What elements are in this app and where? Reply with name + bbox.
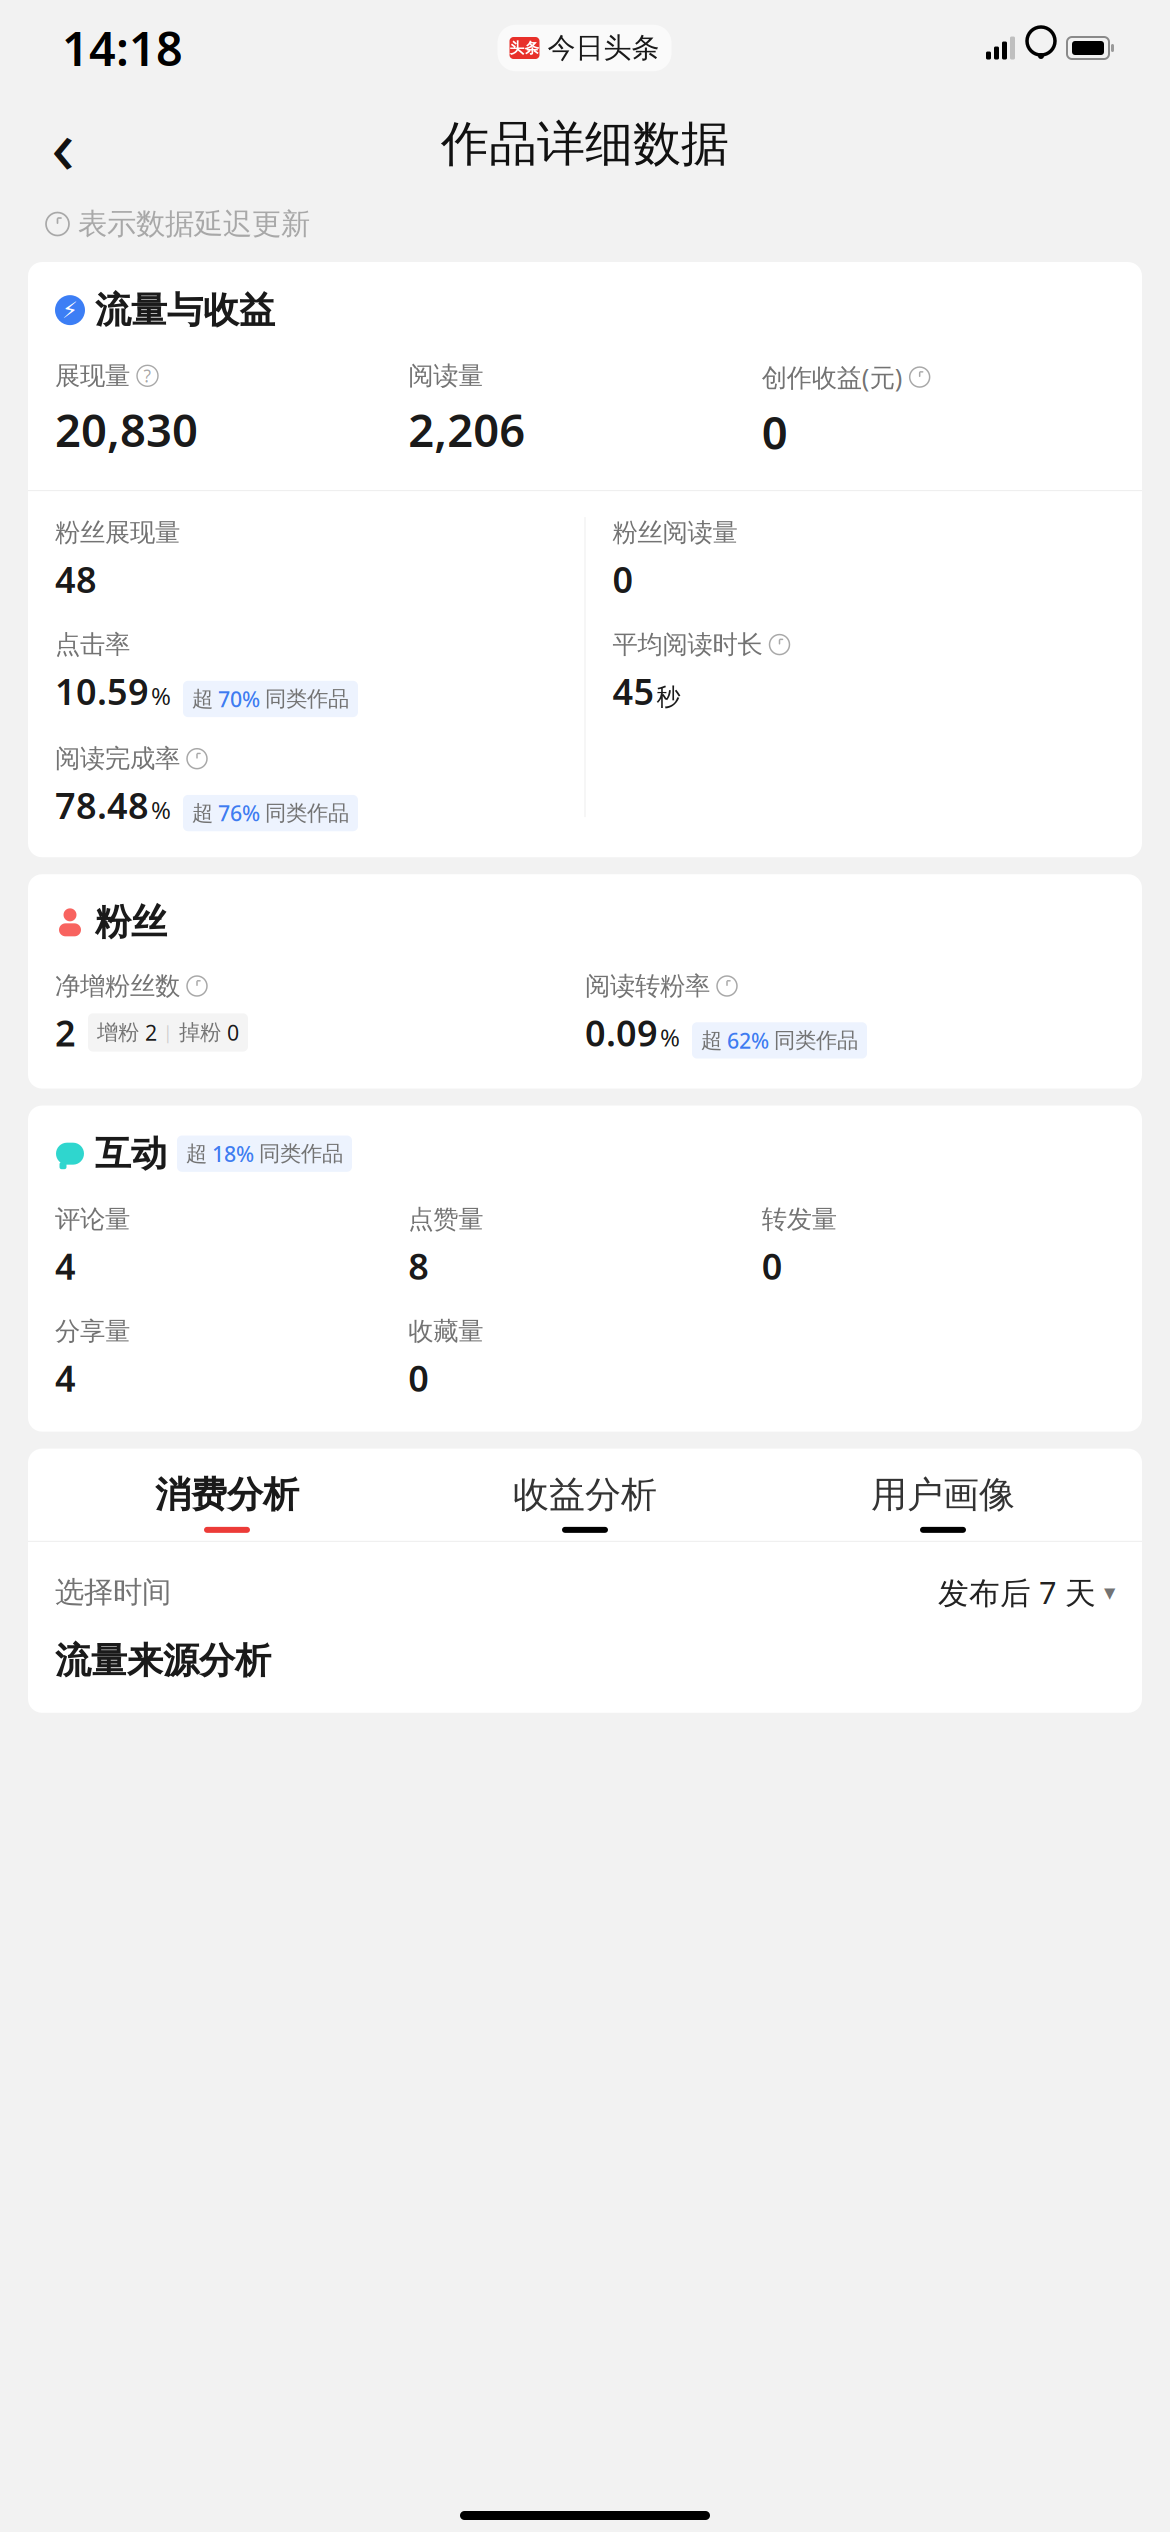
staticText: 互动 — [95, 1132, 167, 1176]
staticText: 头条 — [509, 39, 539, 57]
staticText: 创作收益(元) — [762, 360, 903, 394]
staticText: 同类作品 — [774, 1027, 858, 1053]
staticText: 48 — [55, 555, 97, 603]
staticText: 粉丝展现量 — [55, 517, 180, 548]
staticText: 超 — [192, 800, 213, 826]
staticText: 转发量 — [762, 1204, 837, 1235]
staticText: 10.59 — [55, 667, 149, 715]
staticText: 2 — [55, 1009, 76, 1056]
button[interactable]: 发布后 7 天 — [938, 1572, 1115, 1612]
staticText: 62% — [727, 1026, 769, 1054]
staticText: 发布后 7 天 — [938, 1572, 1096, 1612]
staticText: 0 — [762, 1242, 783, 1290]
staticText: 作品详细数据 — [441, 114, 729, 173]
staticText: 评论量 — [55, 1204, 130, 1235]
staticText: 阅读完成率 — [55, 743, 180, 774]
staticText: 同类作品 — [259, 1141, 343, 1167]
staticText: ‹ — [51, 93, 75, 195]
staticText: % — [660, 1021, 680, 1053]
staticText: 净增粉丝数 — [55, 970, 180, 1002]
staticText: 20,830 — [55, 399, 198, 460]
staticText: | — [163, 1021, 173, 1044]
staticText: ⚡︎ — [62, 297, 78, 323]
staticText: 70% — [218, 685, 260, 713]
staticText: 0 — [408, 1354, 429, 1402]
staticText: 14:18 — [62, 17, 183, 79]
staticText: 超 — [186, 1141, 207, 1167]
staticText: 阅读转粉率 — [585, 970, 710, 1002]
staticText: 平均阅读时长 — [612, 629, 762, 660]
staticText: 2 — [145, 1018, 157, 1047]
staticText: 收藏量 — [408, 1316, 483, 1347]
staticText: 同类作品 — [265, 686, 349, 712]
staticText: 增粉 — [97, 1019, 139, 1046]
button[interactable]: 消费分析 — [48, 1473, 406, 1541]
staticText: 18% — [212, 1139, 254, 1168]
button[interactable]: 收益分析 — [406, 1473, 764, 1541]
staticText: 76% — [218, 799, 260, 827]
staticText: 0 — [612, 555, 633, 603]
staticText: 秒 — [656, 682, 680, 712]
staticText: 流量来源分析 — [55, 1639, 271, 1683]
staticText: 今日头条 — [547, 31, 659, 65]
staticText: % — [151, 794, 171, 826]
staticText: 超 — [192, 686, 213, 712]
staticText: 用户画像 — [871, 1473, 1015, 1517]
staticText: 78.48 — [55, 781, 149, 829]
staticText: 选择时间 — [55, 1574, 171, 1610]
staticText: 点击率 — [55, 629, 130, 660]
staticText: 超 — [701, 1027, 722, 1053]
staticText: 点赞量 — [408, 1204, 483, 1235]
button[interactable]: 用户画像 — [764, 1473, 1122, 1541]
staticText: 消费分析 — [155, 1473, 299, 1517]
staticText: 分享量 — [55, 1316, 130, 1347]
staticText: 2,206 — [408, 399, 525, 460]
staticText: 0 — [762, 402, 788, 462]
staticText: 同类作品 — [265, 800, 349, 826]
staticText: 4 — [55, 1354, 76, 1402]
staticText: % — [151, 680, 171, 712]
staticText: ▾ — [1104, 1579, 1115, 1605]
button[interactable]: 返回 — [28, 109, 98, 179]
staticText: 45 — [612, 667, 654, 715]
staticText: 粉丝 — [95, 900, 167, 944]
staticText: 4 — [55, 1242, 76, 1290]
staticText: 8 — [408, 1242, 429, 1290]
staticText: 表示数据延迟更新 — [78, 206, 310, 242]
staticText: 掉粉 — [179, 1019, 221, 1046]
staticText: ? — [143, 364, 151, 387]
staticText: 阅读量 — [408, 360, 483, 391]
staticText: 收益分析 — [513, 1473, 657, 1517]
staticText: 0 — [227, 1018, 239, 1047]
staticText: 展现量 — [55, 360, 130, 391]
staticText: 粉丝阅读量 — [612, 517, 737, 548]
staticText: 0.09 — [585, 1009, 658, 1056]
staticText: 流量与收益 — [95, 288, 275, 332]
